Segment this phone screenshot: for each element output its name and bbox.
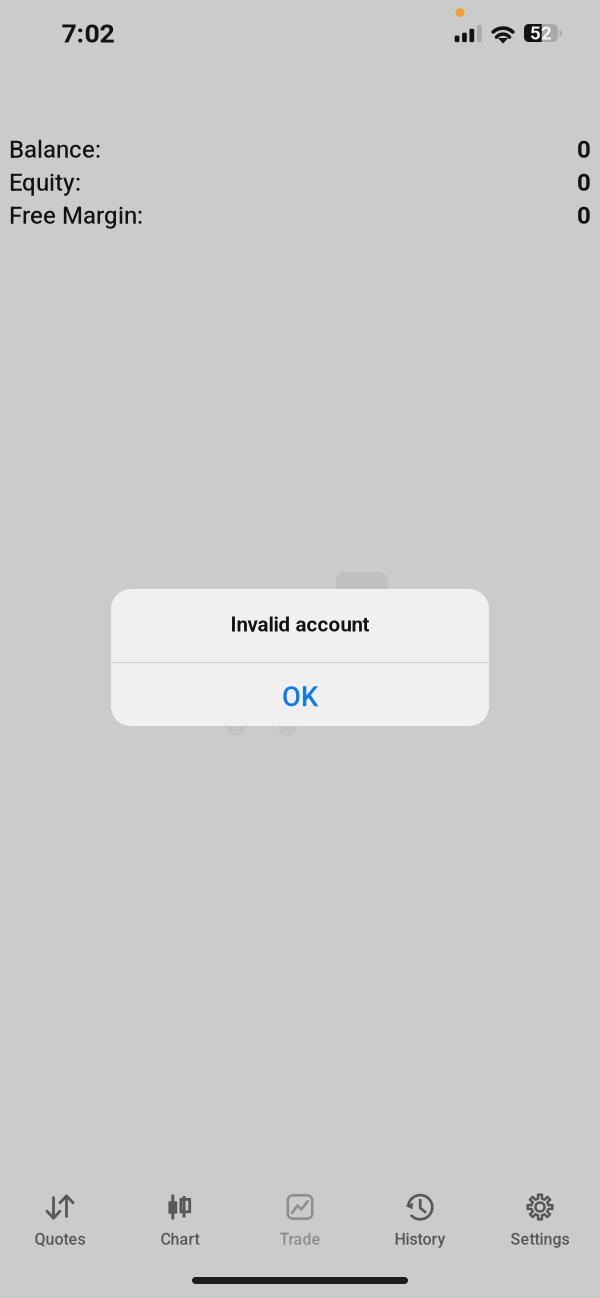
staticText: 52 [530, 22, 552, 44]
button[interactable]: History [360, 1180, 480, 1262]
staticText: Invalid account [230, 612, 369, 637]
staticText: 7:02 [61, 18, 114, 49]
staticText: 0 [577, 201, 591, 229]
staticText: Balance: [9, 135, 101, 163]
staticText: Quotes [34, 1230, 85, 1249]
staticText: Free Margin: [9, 201, 143, 229]
staticText: Settings [510, 1230, 569, 1249]
staticText: 0 [577, 168, 591, 196]
staticText: 0 [577, 135, 591, 163]
button[interactable]: Trade [240, 1180, 360, 1262]
staticText: Trade [279, 1230, 320, 1249]
button[interactable]: Quotes [0, 1180, 120, 1262]
button[interactable]: OK [111, 663, 489, 726]
button[interactable]: Settings [480, 1180, 600, 1262]
staticText: Chart [160, 1230, 199, 1249]
button[interactable]: Chart [120, 1180, 240, 1262]
staticText: OK [282, 681, 318, 713]
staticText: Equity: [9, 168, 81, 196]
staticText: History [394, 1230, 445, 1249]
